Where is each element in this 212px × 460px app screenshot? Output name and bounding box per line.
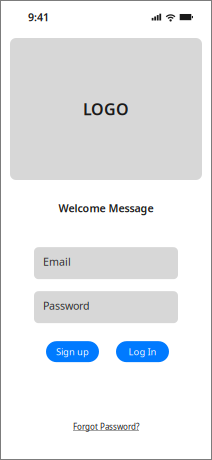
button[interactable]: Password: [34, 291, 178, 323]
staticText: LOGO: [83, 98, 129, 120]
staticText: Password: [43, 299, 90, 313]
button[interactable]: Log In: [116, 341, 169, 362]
button[interactable]: Sign up: [46, 341, 99, 362]
staticText: Email: [43, 255, 71, 269]
staticText: Welcome Message: [58, 201, 153, 215]
button[interactable]: Email: [34, 247, 178, 279]
button[interactable]: Forgot Password?: [73, 421, 139, 432]
staticText: Sign up: [56, 345, 89, 358]
staticText: 9:41: [28, 10, 49, 24]
staticText: Log In: [128, 345, 156, 358]
staticText: Forgot Password?: [73, 421, 139, 432]
